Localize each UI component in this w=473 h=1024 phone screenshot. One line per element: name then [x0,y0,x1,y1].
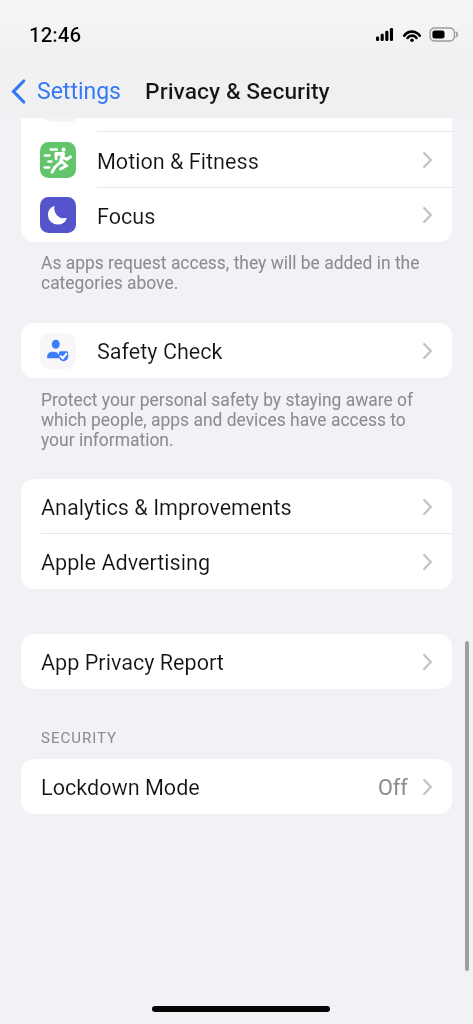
staticText: App Privacy Report [41,650,224,675]
staticText: your information. [41,430,174,450]
staticText: Apple Advertising [41,550,211,575]
button[interactable]: Safety Check [21,323,452,378]
button[interactable]: App Privacy Report [21,634,452,689]
button[interactable]: Analytics & Improvements [21,479,452,534]
button[interactable]: Lockdown Mode [21,759,452,814]
staticText: Motion & Fitness [97,149,259,174]
staticText: Settings [37,78,121,105]
staticText: Safety Check [97,339,223,364]
staticText: Focus [97,204,156,229]
button[interactable]: Apple Advertising [21,534,452,589]
staticText: Off [378,775,408,800]
button[interactable]: Back to Settings [11,69,121,113]
other: Back to Settings [11,79,26,104]
staticText: Protect your personal safety by staying … [41,390,414,410]
button[interactable]: Focus [21,188,452,242]
staticText: Analytics & Improvements [41,495,292,520]
staticText: categories above. [41,273,179,293]
staticText: Privacy & Security [145,78,330,105]
staticText: As apps request access, they will be add… [41,253,420,273]
staticText: 12:46 [29,23,82,47]
button[interactable]: Motion & Fitness [21,132,452,188]
staticText: SECURITY [41,729,118,747]
staticText: which people, apps and devices have acce… [41,410,406,430]
staticText: Lockdown Mode [41,775,200,800]
